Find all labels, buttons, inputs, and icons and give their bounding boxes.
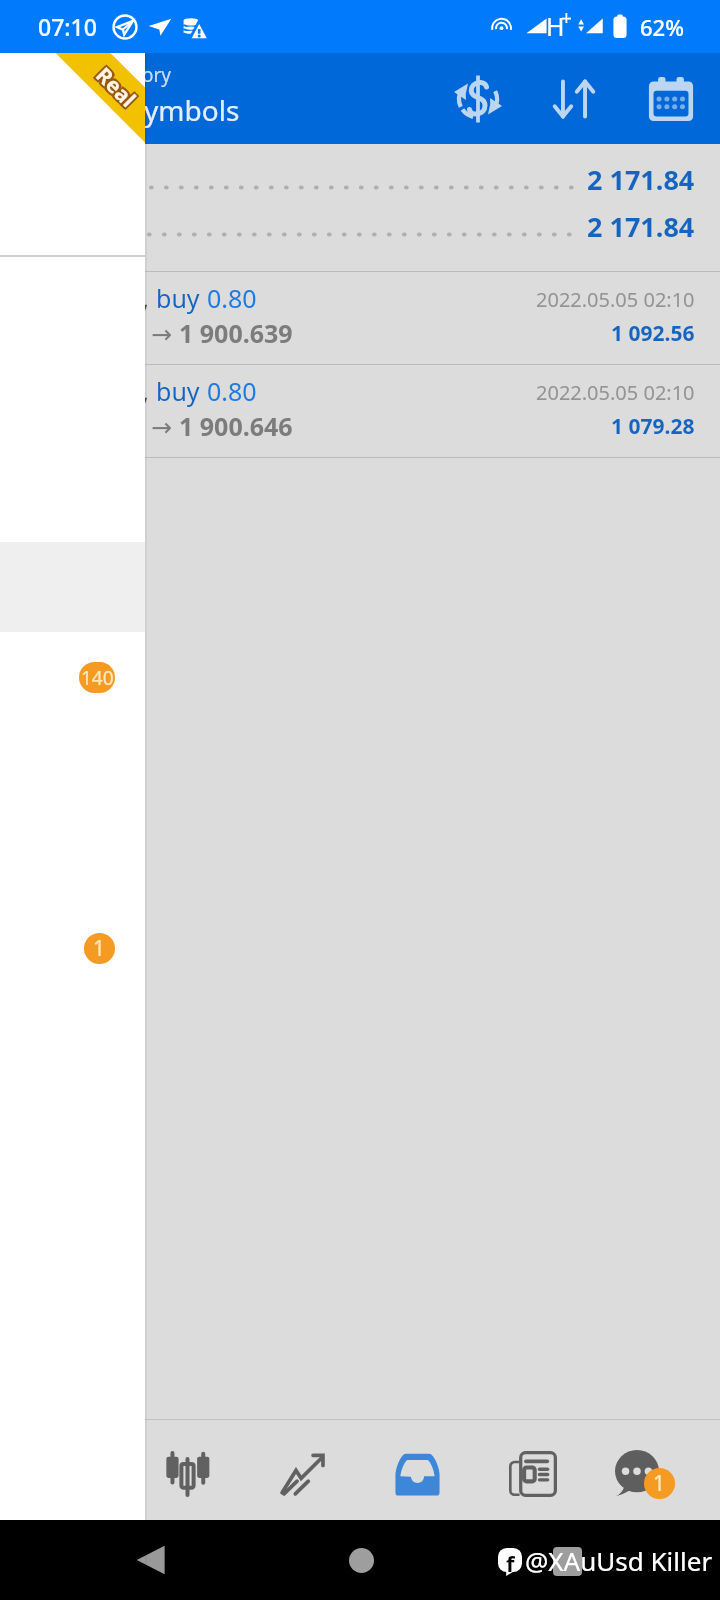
staticText: → xyxy=(151,409,179,443)
staticText: Real xyxy=(91,62,144,115)
button[interactable]: Currency xyxy=(430,53,525,144)
staticText: Real xyxy=(88,60,141,113)
button[interactable]: Charts xyxy=(245,1428,360,1520)
staticText: buy xyxy=(156,281,207,315)
staticText: 2 171.84 xyxy=(587,208,695,245)
button[interactable]: Quotes xyxy=(130,1428,245,1520)
staticText: 1 092.56 xyxy=(611,319,695,348)
staticText: 0.80 xyxy=(207,281,257,315)
staticText: f xyxy=(506,1548,515,1576)
staticText: 1 861.00 xyxy=(45,409,151,443)
staticText: 07:10 xyxy=(38,11,97,42)
staticText: 1 900.639 xyxy=(179,316,293,350)
staticText: 2022.05.05 02:10 xyxy=(536,286,695,313)
staticText: 1 900.646 xyxy=(179,409,293,443)
button[interactable]: Trade xyxy=(360,1428,475,1520)
button[interactable]: Sort xyxy=(526,53,621,144)
staticText: Real xyxy=(88,62,141,115)
staticText: @XAuUsd Killer xyxy=(525,1543,713,1578)
staticText: Real xyxy=(89,58,142,111)
button[interactable]: Recents xyxy=(553,1547,582,1576)
staticText: Real xyxy=(92,61,145,114)
staticText: Real xyxy=(87,61,140,114)
staticText: 1 079.28 xyxy=(611,412,695,441)
button[interactable]: News xyxy=(475,1428,590,1520)
staticText: Real xyxy=(89,64,142,117)
staticText: buy xyxy=(156,374,207,408)
staticText: XAUUSD, xyxy=(44,374,156,408)
button[interactable]: Home xyxy=(349,1548,374,1573)
staticText: H xyxy=(546,9,565,43)
staticText: All symbols xyxy=(91,91,240,129)
button[interactable]: Back xyxy=(134,1543,168,1577)
staticText: 1 xyxy=(93,934,106,963)
staticText: XAUUSD, xyxy=(44,281,156,315)
staticText: 2 171.84 xyxy=(587,161,695,198)
staticText: 140 xyxy=(81,665,114,691)
staticText: 0.80 xyxy=(207,374,257,408)
staticText: 2022.05.05 02:10 xyxy=(536,379,695,406)
staticText: Real xyxy=(89,61,142,114)
button[interactable]: Messages xyxy=(590,1428,705,1520)
staticText: 1 861.00 xyxy=(45,316,151,350)
staticText: + xyxy=(561,5,572,31)
staticText: 62% xyxy=(640,12,684,42)
staticText: → xyxy=(151,316,179,350)
button[interactable]: Calendar xyxy=(623,53,718,144)
button[interactable]: XAUUSD, xyxy=(0,365,720,458)
staticText: History xyxy=(107,62,171,88)
staticText: 1 xyxy=(653,1469,666,1498)
staticText: Real xyxy=(91,60,144,113)
button[interactable]: XAUUSD, xyxy=(0,272,720,365)
